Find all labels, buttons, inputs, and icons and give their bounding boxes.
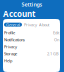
button[interactable]: Privacy: [3, 43, 60, 50]
staticText: Account: [3, 9, 35, 19]
button[interactable]: General: [4, 23, 22, 27]
staticText: Privacy: [4, 44, 17, 49]
staticText: Settings: [21, 1, 42, 8]
staticText: 2.1 GB: [47, 51, 59, 56]
staticText: Privacy: [24, 22, 37, 27]
button[interactable]: Help: [3, 57, 60, 64]
staticText: Profile: [4, 30, 15, 35]
staticText: General: [6, 22, 20, 27]
button[interactable]: About: [39, 22, 49, 27]
staticText: About: [39, 22, 49, 27]
staticText: On: [54, 37, 59, 42]
staticText: Storage: [4, 51, 17, 56]
staticText: Edit: [53, 30, 59, 35]
button[interactable]: Notifications: [3, 36, 60, 43]
staticText: Help: [4, 58, 12, 63]
button[interactable]: Profile: [3, 29, 60, 36]
button[interactable]: Storage: [3, 50, 60, 57]
button[interactable]: Privacy: [24, 22, 37, 27]
staticText: Notifications: [4, 37, 25, 42]
